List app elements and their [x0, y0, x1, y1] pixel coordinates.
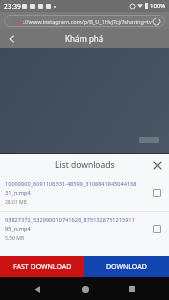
staticText: https [9, 18, 23, 25]
button[interactable]: Reload [153, 18, 160, 25]
staticText: 28.01 MB [5, 199, 27, 206]
staticText: List downloads [55, 159, 115, 171]
staticText: 23:39 [4, 2, 21, 11]
staticText: 95_n.mp4 [5, 225, 31, 233]
staticText: 10000000_6091106331-48599_31088418450441… [5, 180, 137, 188]
button[interactable]: Home [74, 278, 96, 300]
staticText: 93827372_532990010741628_875132875121591… [5, 216, 135, 224]
button[interactable]: Back [26, 278, 48, 300]
staticText: 100% [150, 2, 166, 10]
button[interactable]: Close [150, 158, 164, 172]
button[interactable]: Back [5, 32, 19, 46]
staticText: 31_n.mp4 [5, 189, 31, 197]
button[interactable]: https [4, 15, 165, 27]
staticText: FAST DOWNLOAD [13, 262, 72, 272]
staticText: Khám phá [65, 33, 104, 44]
button[interactable]: Recents [121, 278, 143, 300]
staticText: ://www.instagram.com/p/B_U_1HvJTcj/?shar… [23, 18, 153, 25]
button[interactable]: DOWNLOAD [84, 256, 169, 277]
button[interactable]: Select [150, 186, 164, 200]
staticText: 5.50 MB [5, 235, 25, 242]
button[interactable]: FAST DOWNLOAD [0, 256, 84, 277]
staticText: DOWNLOAD [106, 262, 147, 272]
button[interactable]: 10000000_6091106331-48599_31088418450441… [0, 176, 169, 211]
button[interactable]: 93827372_532990010741628_875132875121591… [0, 212, 169, 247]
button[interactable]: Select [150, 222, 164, 236]
